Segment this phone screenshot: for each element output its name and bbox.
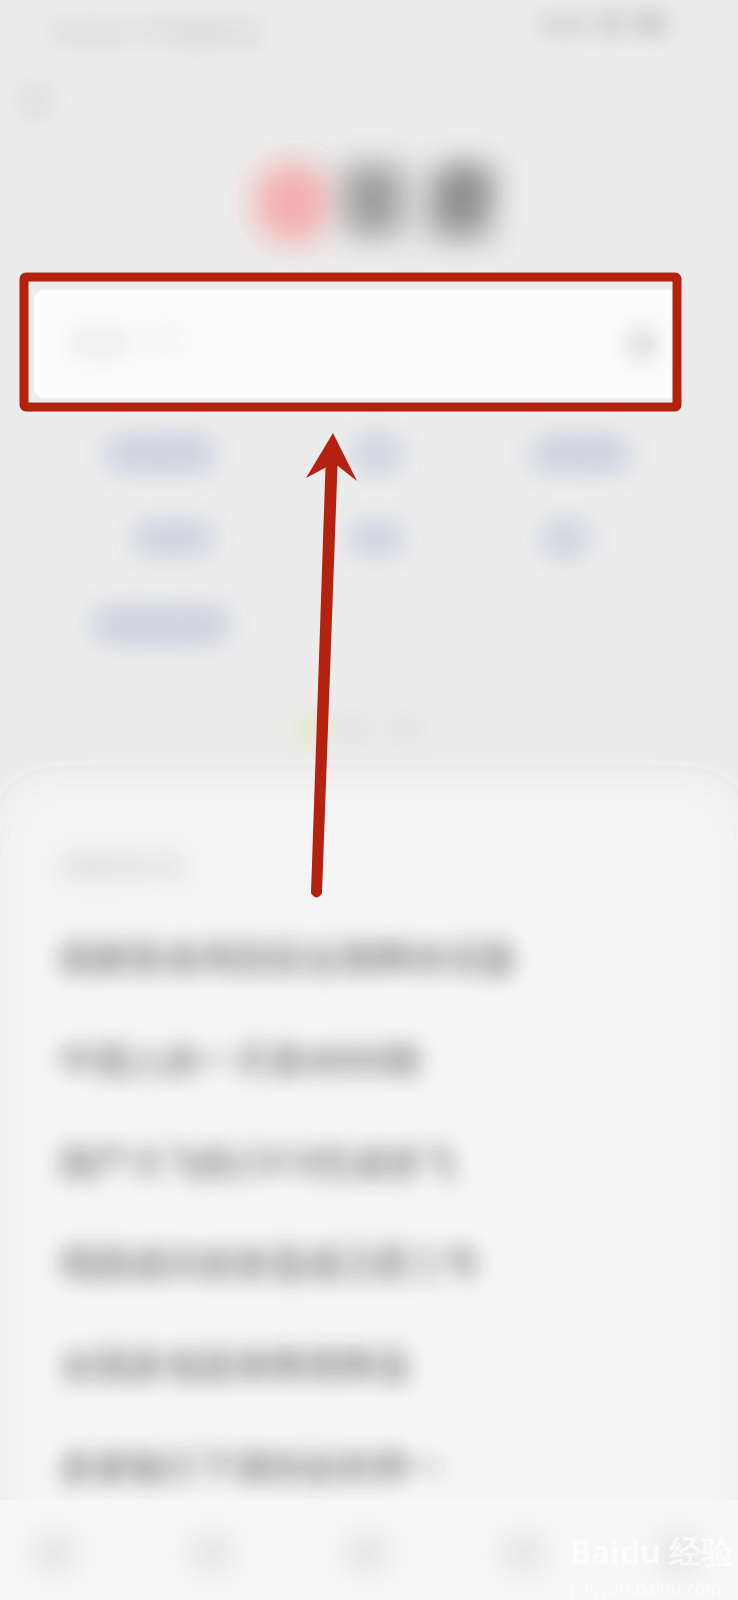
button[interactable]: 中国人的一天第4000期 (0, 1009, 738, 1111)
button[interactable]: Refresh hot searches (300, 712, 422, 746)
button[interactable]: 全国多地迎来降雨降温 (0, 1315, 738, 1417)
button[interactable]: Hot search keyword (534, 441, 626, 467)
button[interactable]: 国产大飞机C919完成首飞 (0, 1111, 738, 1213)
button[interactable]: Hot search keyword (95, 612, 226, 638)
button[interactable]: Hot search keyword (352, 528, 401, 549)
button[interactable]: 国家医保局回应近期网传话题 (0, 908, 738, 1010)
button[interactable]: 我国成功发射遥感卫星三号 (0, 1213, 738, 1315)
button[interactable]: 多家银行下调存款利率一 (0, 1417, 738, 1519)
button[interactable]: Search (34, 290, 682, 398)
button[interactable]: Hot search keyword (354, 443, 400, 465)
staticText: Baidu 经验 (570, 1530, 733, 1573)
button[interactable]: Hot search keyword (137, 527, 210, 549)
button[interactable]: Tab (659, 1534, 699, 1572)
button[interactable]: Hot search keyword (110, 441, 210, 467)
button[interactable]: Hot search keyword (543, 528, 588, 549)
